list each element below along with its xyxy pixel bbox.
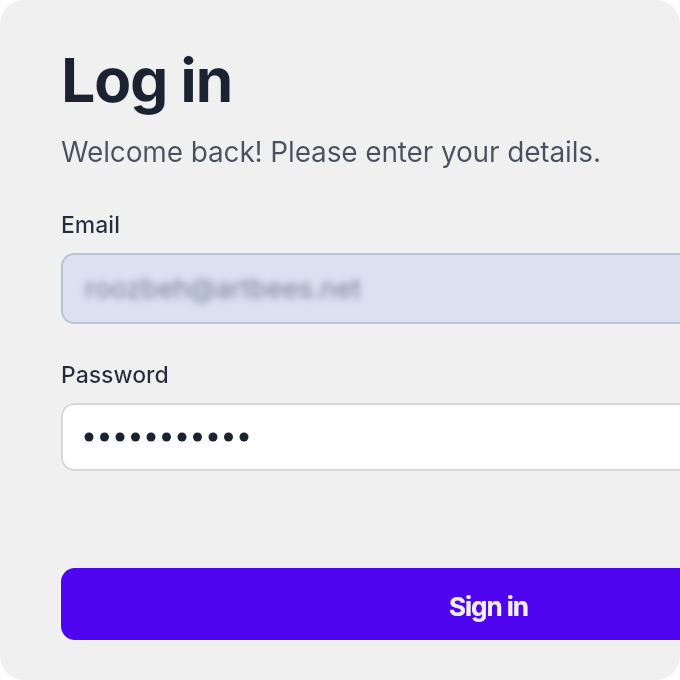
button[interactable]: Sign in <box>61 568 680 640</box>
staticText: Password <box>61 361 169 389</box>
staticText: Log in <box>61 43 232 117</box>
staticText: Sign in <box>449 591 528 622</box>
button[interactable]: roozbeh@artbees.net <box>61 253 680 324</box>
staticText: Welcome back! Please enter your details. <box>61 135 601 169</box>
staticText: Email <box>61 211 120 239</box>
staticText: roozbeh@artbees.net <box>85 272 362 305</box>
button[interactable] <box>61 403 680 471</box>
